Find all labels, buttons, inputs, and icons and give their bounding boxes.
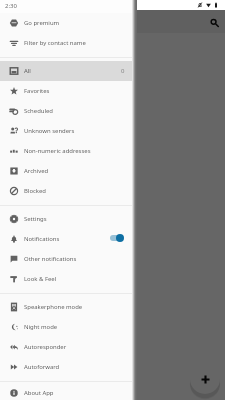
staticText: Notifications (24, 235, 60, 243)
staticText: Non-numeric addresses (24, 147, 91, 155)
button[interactable]: Favorites (0, 81, 132, 101)
button[interactable]: Unknown senders (0, 121, 132, 141)
staticText: About App (24, 389, 54, 397)
staticText: Unknown senders (24, 127, 75, 135)
staticText: Speakerphone mode (24, 303, 83, 311)
button[interactable]: Start chat (190, 364, 220, 394)
staticText: Filter by contact name (24, 39, 86, 47)
staticText: Autoresponder (24, 343, 67, 351)
button[interactable]: Scheduled (0, 101, 132, 121)
button[interactable]: All (0, 61, 132, 81)
button[interactable]: Night mode (0, 317, 132, 337)
staticText: Other notifications (24, 255, 77, 263)
button[interactable]: Look & Feel (0, 269, 132, 289)
staticText: Blocked (24, 187, 47, 195)
staticText: Autoforward (24, 363, 60, 371)
staticText: Favorites (24, 87, 50, 95)
staticText: Night mode (24, 323, 58, 331)
button[interactable]: Go premium (0, 13, 132, 33)
staticText: Scheduled (24, 107, 53, 115)
staticText: Look & Feel (24, 275, 57, 283)
button[interactable]: Search (205, 13, 223, 31)
button[interactable]: Filter by contact name (0, 33, 132, 53)
staticText: 0 (121, 67, 125, 75)
button[interactable]: Speakerphone mode (0, 297, 132, 317)
staticText: Settings (24, 215, 47, 223)
button[interactable]: Non-numeric addresses (0, 141, 132, 161)
staticText: 2:30 (5, 2, 17, 10)
button[interactable]: Settings (0, 209, 132, 229)
button[interactable]: About App (0, 385, 132, 400)
button[interactable]: Other notifications (0, 249, 132, 269)
staticText: Messages (98, 16, 136, 27)
button[interactable]: Blocked (0, 181, 132, 201)
button[interactable]: Autoforward (0, 357, 132, 377)
button[interactable]: Archived (0, 161, 132, 181)
staticText: Archived (24, 167, 49, 175)
staticText: All (24, 67, 31, 75)
button[interactable]: Notifications (0, 229, 132, 249)
staticText: Go premium (24, 19, 60, 27)
button[interactable]: Autoresponder (0, 337, 132, 357)
